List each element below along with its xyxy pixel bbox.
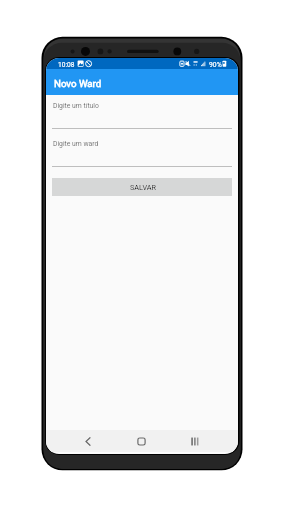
staticText: Digite um título bbox=[53, 102, 99, 110]
button[interactable]: SALVAR bbox=[52, 178, 232, 196]
staticText: Digite um ward bbox=[53, 140, 99, 148]
staticText: 90% bbox=[209, 61, 222, 69]
button[interactable]: Back bbox=[78, 431, 98, 451]
staticText: SALVAR bbox=[130, 183, 157, 192]
staticText: Novo Ward bbox=[54, 78, 102, 89]
button[interactable]: Home bbox=[131, 431, 151, 451]
staticText: 10:08 bbox=[58, 61, 75, 69]
button[interactable]: Recent apps bbox=[185, 431, 205, 451]
